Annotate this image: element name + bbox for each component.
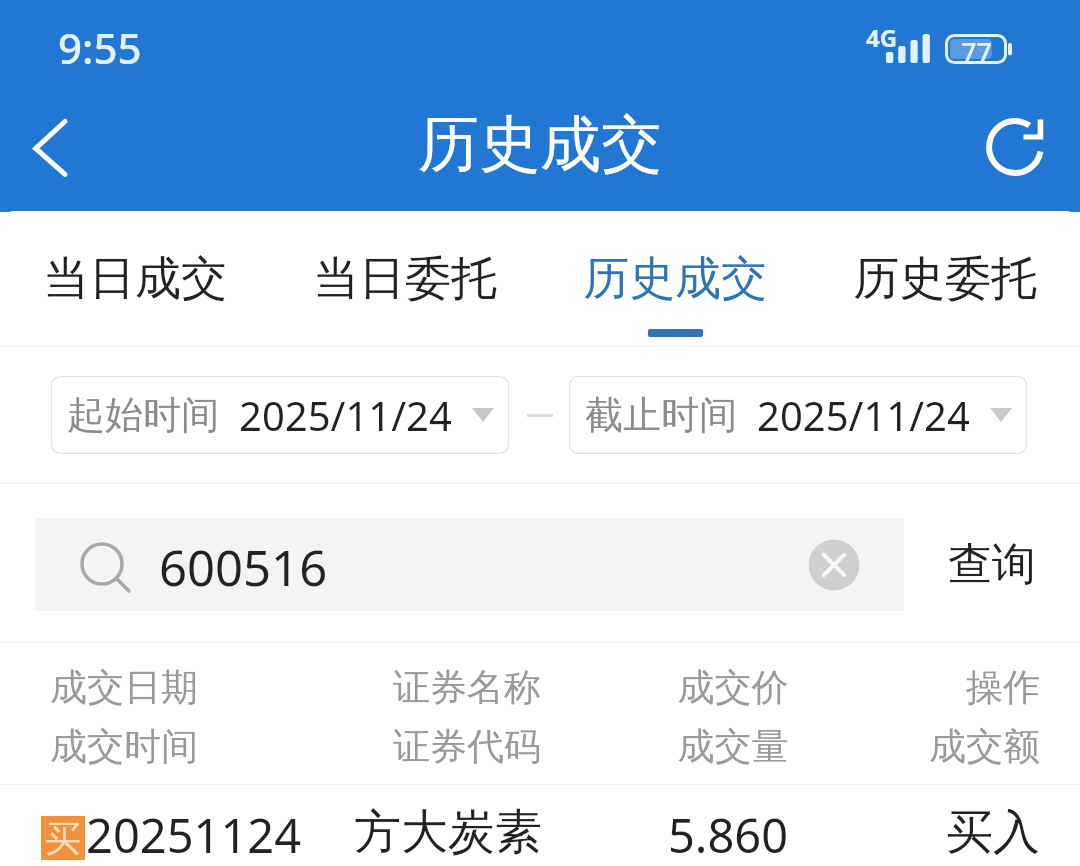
staticText: 600516: [159, 534, 328, 601]
staticText: 成交日期: [50, 664, 198, 711]
button[interactable]: 600516: [35, 518, 904, 611]
button[interactable]: Refresh: [975, 107, 1055, 187]
staticText: 成交额: [640, 723, 1040, 770]
staticText: 成交时间: [50, 723, 198, 770]
staticText: 历史成交: [418, 106, 662, 183]
button[interactable]: Back: [14, 106, 94, 186]
staticText: 买入: [640, 803, 1040, 862]
staticText: 4G: [866, 21, 898, 54]
button[interactable]: 买: [0, 785, 1080, 866]
staticText: 当日委托: [313, 250, 497, 308]
staticText: 起始时间: [67, 391, 219, 439]
staticText: 方大炭素: [248, 803, 648, 862]
staticText: 截止时间: [585, 391, 737, 439]
staticText: 2025/11/24: [757, 388, 970, 442]
staticText: 77: [961, 34, 992, 64]
button[interactable]: 查询: [930, 520, 1053, 608]
staticText: 买: [45, 816, 81, 860]
staticText: 09:31:05: [50, 859, 205, 866]
staticText: 证券名称: [267, 664, 667, 711]
staticText: 操作: [640, 664, 1040, 711]
staticText: 5.860: [528, 803, 928, 866]
staticText: 成交价: [533, 664, 933, 711]
staticText: 查询: [948, 537, 1036, 592]
button[interactable]: 历史委托: [810, 211, 1080, 345]
staticText: 证券代码: [267, 723, 667, 770]
button[interactable]: Clear text: [808, 539, 860, 591]
button[interactable]: 截止时间: [569, 376, 1027, 454]
staticText: 历史成交: [583, 250, 767, 308]
button[interactable]: 历史成交: [540, 211, 810, 345]
button[interactable]: 当日成交: [0, 211, 270, 345]
staticText: 当日成交: [43, 250, 227, 308]
button[interactable]: 起始时间: [51, 376, 509, 454]
staticText: 20251124: [86, 803, 302, 866]
staticText: 成交量: [533, 723, 933, 770]
staticText: 2025/11/24: [239, 388, 452, 442]
staticText: 历史委托: [853, 250, 1037, 308]
button[interactable]: 当日委托: [270, 211, 540, 345]
staticText: 9:55: [58, 19, 142, 76]
